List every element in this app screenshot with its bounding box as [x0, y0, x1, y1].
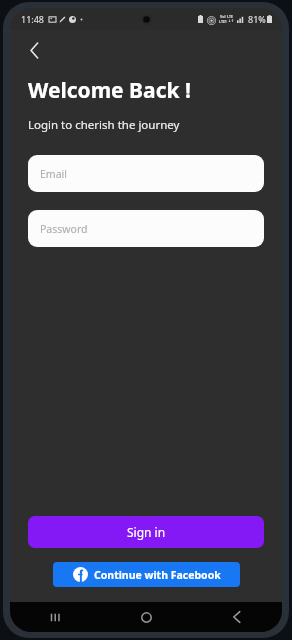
staticText: LTE: [227, 14, 233, 19]
button[interactable]: Back: [222, 602, 252, 632]
staticText: Sign in: [127, 524, 166, 540]
staticText: ↓↑: [228, 19, 234, 23]
button[interactable]: Back: [20, 36, 48, 64]
staticText: Welcome Back !: [28, 76, 191, 105]
button[interactable]: Sign in: [28, 516, 264, 548]
staticText: Login to cherish the journey: [28, 117, 180, 133]
button[interactable]: Continue with Facebook: [53, 562, 240, 587]
staticText: Email: [40, 167, 67, 181]
staticText: LTE1: [219, 19, 227, 24]
staticText: 11:48: [21, 13, 45, 25]
staticText: 81%: [248, 13, 266, 25]
button[interactable]: Email: [28, 155, 264, 192]
button[interactable]: Recent apps: [40, 602, 70, 632]
button[interactable]: Home: [131, 602, 161, 632]
staticText: Vol: [220, 14, 226, 19]
button[interactable]: Password: [28, 210, 264, 247]
staticText: Password: [40, 222, 88, 236]
staticText: Continue with Facebook: [94, 568, 221, 582]
